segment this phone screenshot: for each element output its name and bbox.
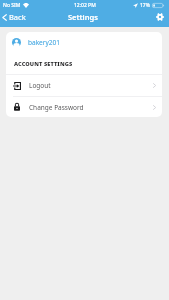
staticText: Back: [9, 12, 26, 22]
button[interactable]: Logout: [6, 75, 162, 96]
button[interactable]: Back: [0, 10, 31, 24]
staticText: Logout: [29, 81, 51, 90]
button[interactable]: Change Password: [6, 97, 162, 117]
staticText: 12:02 PM: [74, 2, 96, 9]
button[interactable]: Settings: [154, 11, 165, 22]
staticText: Change Password: [29, 103, 84, 112]
button[interactable]: bakery201: [6, 32, 162, 52]
staticText: ACCOUNT SETTINGS: [14, 60, 73, 68]
staticText: No SIM: [3, 2, 21, 9]
staticText: Settings: [68, 12, 98, 22]
staticText: 17%: [140, 2, 150, 9]
staticText: bakery201: [28, 38, 60, 47]
